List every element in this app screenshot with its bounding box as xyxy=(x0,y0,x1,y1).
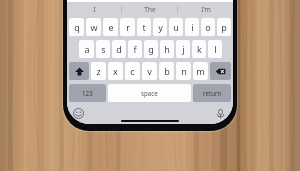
staticText: g xyxy=(148,43,154,55)
button[interactable]: w xyxy=(86,18,101,36)
staticText: i xyxy=(191,21,194,33)
button[interactable]: Emoji keyboard xyxy=(72,107,85,120)
staticText: u xyxy=(173,21,179,33)
staticText: q xyxy=(74,21,80,33)
button[interactable]: h xyxy=(160,40,174,58)
button[interactable]: space xyxy=(108,84,191,102)
staticText: a xyxy=(84,43,90,55)
staticText: f xyxy=(133,43,137,55)
button[interactable]: I xyxy=(67,2,121,17)
button[interactable]: x xyxy=(108,62,123,80)
staticText: n xyxy=(181,65,187,77)
button[interactable]: c xyxy=(125,62,140,80)
button[interactable]: r xyxy=(120,18,135,36)
staticText: k xyxy=(197,43,202,55)
staticText: d xyxy=(116,43,122,55)
staticText: b xyxy=(164,65,170,77)
staticText: l xyxy=(214,43,217,55)
button[interactable]: m xyxy=(193,62,208,80)
button[interactable]: p xyxy=(217,18,231,36)
staticText: o xyxy=(205,21,211,33)
button[interactable]: a xyxy=(79,40,94,58)
button[interactable]: j xyxy=(176,40,190,58)
button[interactable]: o xyxy=(201,18,215,36)
staticText: return xyxy=(203,89,222,97)
staticText: j xyxy=(182,43,185,55)
button[interactable]: b xyxy=(159,62,174,80)
staticText: p xyxy=(221,21,227,33)
button[interactable]: Delete xyxy=(210,62,231,80)
button[interactable]: Shift xyxy=(69,62,89,80)
staticText: The xyxy=(144,5,156,14)
button[interactable]: The xyxy=(122,2,177,17)
button[interactable]: u xyxy=(169,18,183,36)
button[interactable]: e xyxy=(103,18,118,36)
staticText: w xyxy=(90,21,98,33)
button[interactable]: i xyxy=(185,18,199,36)
button[interactable]: 123 xyxy=(69,84,106,102)
button[interactable]: t xyxy=(137,18,151,36)
staticText: space xyxy=(141,89,158,97)
button[interactable]: I'm xyxy=(178,2,233,17)
button[interactable]: v xyxy=(142,62,157,80)
staticText: z xyxy=(96,65,101,77)
staticText: e xyxy=(108,21,114,33)
button[interactable]: n xyxy=(176,62,191,80)
button[interactable]: g xyxy=(144,40,158,58)
button[interactable]: Dictation xyxy=(214,107,227,120)
button[interactable]: z xyxy=(91,62,106,80)
staticText: h xyxy=(164,43,170,55)
staticText: m xyxy=(196,65,205,77)
button[interactable]: s xyxy=(96,40,110,58)
staticText: I xyxy=(93,5,96,14)
button[interactable]: y xyxy=(153,18,167,36)
staticText: s xyxy=(101,43,106,55)
staticText: 123 xyxy=(82,89,93,97)
staticText: y xyxy=(158,21,163,33)
button[interactable]: l xyxy=(208,40,222,58)
staticText: v xyxy=(147,65,152,77)
button[interactable]: f xyxy=(128,40,142,58)
button[interactable]: k xyxy=(192,40,206,58)
staticText: x xyxy=(113,65,118,77)
staticText: t xyxy=(142,21,146,33)
button[interactable]: return xyxy=(193,84,231,102)
button[interactable]: q xyxy=(69,18,84,36)
button[interactable]: d xyxy=(112,40,126,58)
staticText: I'm xyxy=(201,5,211,14)
staticText: c xyxy=(130,65,135,77)
staticText: r xyxy=(126,21,130,33)
